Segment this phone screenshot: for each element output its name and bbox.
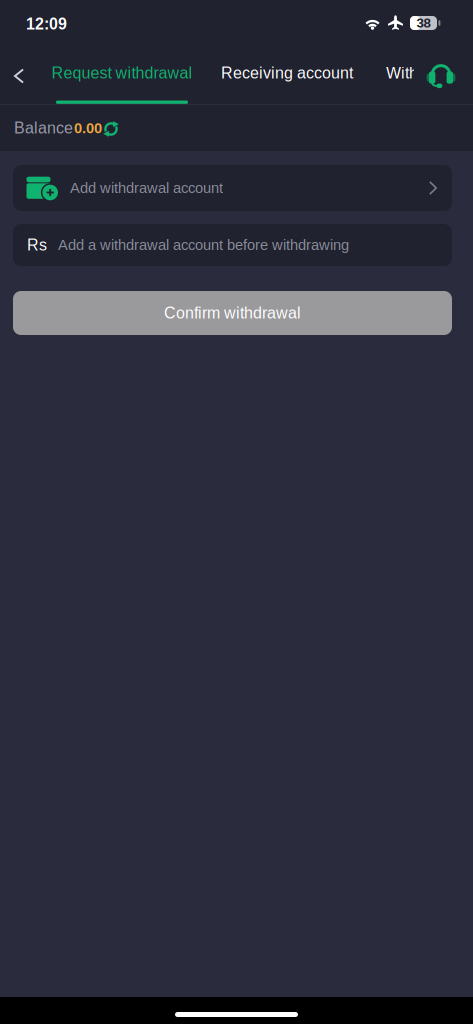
button[interactable]: Confirm withdrawal — [13, 291, 452, 335]
button[interactable]: Withdrawal record — [386, 55, 473, 91]
staticText: Withdrawal record — [386, 64, 473, 82]
button[interactable]: Refresh balance — [97, 115, 125, 143]
button[interactable]: Request withdrawal — [47, 60, 197, 104]
staticText: Balance — [14, 119, 73, 137]
staticText: Add a withdrawal account before withdraw… — [58, 237, 349, 253]
button[interactable]: Add withdrawal account — [13, 165, 452, 211]
staticText: Request withdrawal — [51, 64, 192, 82]
staticText: 38 — [416, 16, 430, 30]
staticText: 12:09 — [26, 15, 67, 33]
staticText: Rs — [27, 236, 47, 254]
staticText: Receiving account — [221, 64, 353, 82]
button[interactable]: Customer support — [414, 54, 473, 95]
staticText: 0.00 — [74, 120, 102, 136]
button[interactable]: Back — [0, 54, 38, 98]
button[interactable]: Receiving account — [217, 55, 357, 91]
staticText: Add withdrawal account — [70, 180, 223, 196]
staticText: Confirm withdrawal — [164, 304, 301, 322]
